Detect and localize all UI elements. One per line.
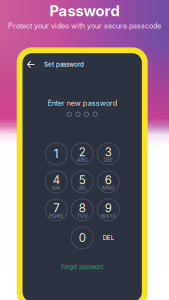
staticText: 1 (54, 147, 59, 161)
staticText: Protect your video with your secure pass… (8, 22, 161, 30)
staticText: GHI (47, 181, 66, 194)
staticText: Password (49, 2, 119, 20)
button[interactable]: 6 (97, 171, 119, 193)
button[interactable]: 8 (71, 199, 93, 221)
button[interactable]: 4 (45, 171, 67, 193)
button[interactable]: 9 (97, 199, 119, 221)
staticText: 7 (53, 201, 59, 215)
button[interactable]: 5 (71, 171, 93, 193)
button[interactable]: DEL (97, 227, 119, 249)
button[interactable]: 7 (45, 199, 67, 221)
staticText: JKL (73, 181, 92, 194)
staticText: 2 (79, 145, 86, 159)
staticText: TUV (71, 209, 94, 222)
staticText: Forgot password (61, 264, 103, 271)
button[interactable]: 2 (71, 143, 93, 165)
staticText: DEL (103, 234, 114, 241)
staticText: MNO (95, 181, 121, 194)
staticText: PQRS (42, 209, 71, 222)
staticText: ABC (71, 153, 94, 166)
staticText: 4 (53, 173, 60, 187)
button[interactable]: 1 (45, 143, 67, 165)
staticText: 8 (79, 201, 86, 215)
staticText: Enter new password (48, 99, 117, 108)
button[interactable]: Back (23, 56, 39, 72)
staticText: 3 (105, 145, 112, 159)
button[interactable]: 0 (71, 227, 93, 249)
staticText: 0 (79, 231, 86, 245)
staticText: DEF (98, 153, 118, 166)
staticText: WXYZ (92, 209, 124, 222)
staticText: 6 (105, 173, 112, 187)
button[interactable]: 3 (97, 143, 119, 165)
staticText: Set password (44, 61, 84, 68)
staticText: 5 (79, 173, 86, 187)
staticText: 9 (105, 201, 112, 215)
button[interactable]: Forgot password (22, 264, 142, 270)
